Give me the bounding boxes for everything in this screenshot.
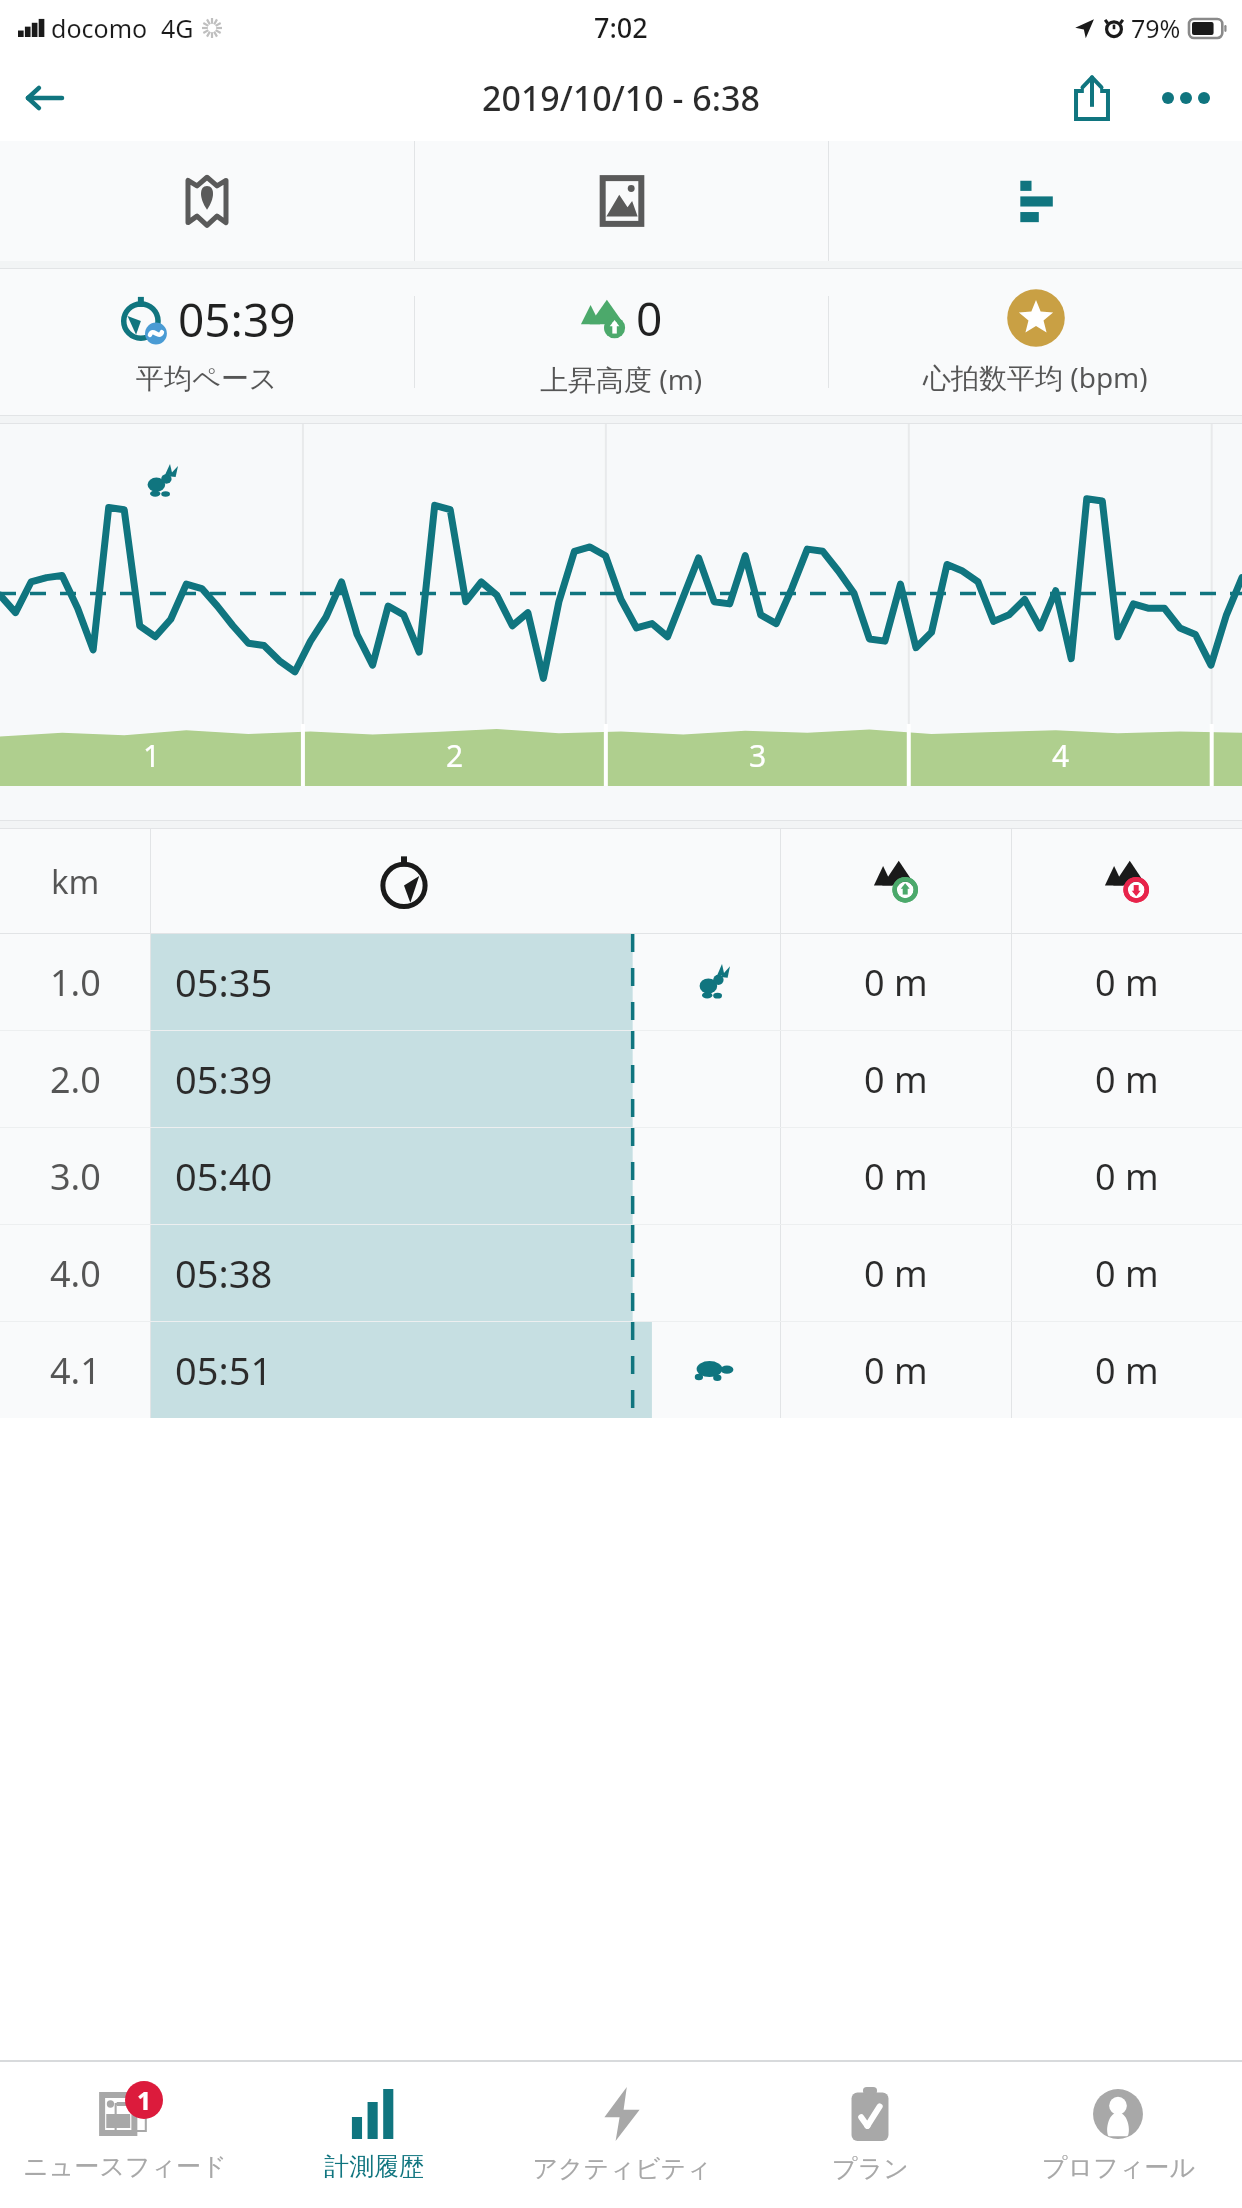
staticText: 計測履歴 <box>324 2151 424 2182</box>
staticText: 平均ペース <box>136 361 278 396</box>
button[interactable]: 心拍数平均 (bpm) <box>829 269 1242 415</box>
staticText: 4G <box>161 11 194 45</box>
button[interactable]: プロフィール <box>994 2062 1242 2208</box>
staticText: 4.0 <box>50 1249 101 1298</box>
staticText: 0 m <box>1095 1346 1159 1395</box>
staticText: 0 m <box>1095 958 1159 1007</box>
staticText: プラン <box>832 2153 909 2184</box>
button[interactable]: 3.0 <box>0 1128 1242 1224</box>
staticText: 0 m <box>864 1249 928 1298</box>
button[interactable]: 1 <box>0 2062 249 2208</box>
staticText: プロフィール <box>1042 2152 1195 2183</box>
staticText: 0 m <box>864 1055 928 1104</box>
staticText: 05:51 <box>175 1344 273 1396</box>
staticText: 0 m <box>1095 1055 1159 1104</box>
staticText: 3 <box>749 735 767 776</box>
button[interactable]: Share <box>1054 60 1130 136</box>
staticText: 79% <box>1131 11 1181 45</box>
staticText: 05:38 <box>175 1247 273 1299</box>
staticText: ニュースフィード <box>23 2151 227 2182</box>
staticText: アクティビティ <box>532 2153 712 2184</box>
staticText: docomo <box>51 11 148 45</box>
staticText: 2019/10/10 - 6:38 <box>482 75 760 121</box>
staticText: 0 m <box>1095 1249 1159 1298</box>
staticText: 2.0 <box>50 1055 101 1104</box>
staticText: 0 m <box>864 1152 928 1201</box>
button[interactable]: Photos <box>415 141 828 261</box>
staticText: 4.1 <box>50 1346 101 1395</box>
button[interactable]: Stats <box>829 141 1242 261</box>
staticText: 1.0 <box>50 958 101 1007</box>
button[interactable]: 05:39 <box>0 269 414 415</box>
staticText: 0 m <box>864 958 928 1007</box>
staticText: 1 <box>137 2083 152 2117</box>
staticText: 05:40 <box>175 1150 273 1202</box>
button[interactable]: More options <box>1148 60 1224 136</box>
staticText: 0 m <box>864 1346 928 1395</box>
staticText: 上昇高度 (m) <box>540 360 703 398</box>
button[interactable]: 0 <box>415 269 828 415</box>
staticText: 05:39 <box>175 1053 273 1105</box>
staticText: 1 <box>143 735 161 776</box>
button[interactable]: Map <box>0 141 414 261</box>
button[interactable]: 4.1 <box>0 1322 1242 1418</box>
button[interactable]: アクティビティ <box>498 2062 746 2208</box>
staticText: km <box>51 859 100 904</box>
staticText: 05:35 <box>175 956 273 1008</box>
staticText: 0 m <box>1095 1152 1159 1201</box>
staticText: 心拍数平均 (bpm) <box>923 358 1148 396</box>
button[interactable]: Back <box>12 66 76 130</box>
staticText: 2 <box>446 735 464 776</box>
button[interactable]: 計測履歴 <box>249 2062 498 2208</box>
staticText: 4 <box>1052 735 1070 776</box>
staticText: 7:02 <box>594 9 648 46</box>
button[interactable]: 1.0 <box>0 934 1242 1030</box>
staticText: 0 <box>636 287 663 350</box>
button[interactable]: 4.0 <box>0 1225 1242 1321</box>
button[interactable]: プラン <box>746 2062 994 2208</box>
staticText: 05:39 <box>178 288 296 351</box>
staticText: 3.0 <box>50 1152 101 1201</box>
button[interactable]: 2.0 <box>0 1031 1242 1127</box>
